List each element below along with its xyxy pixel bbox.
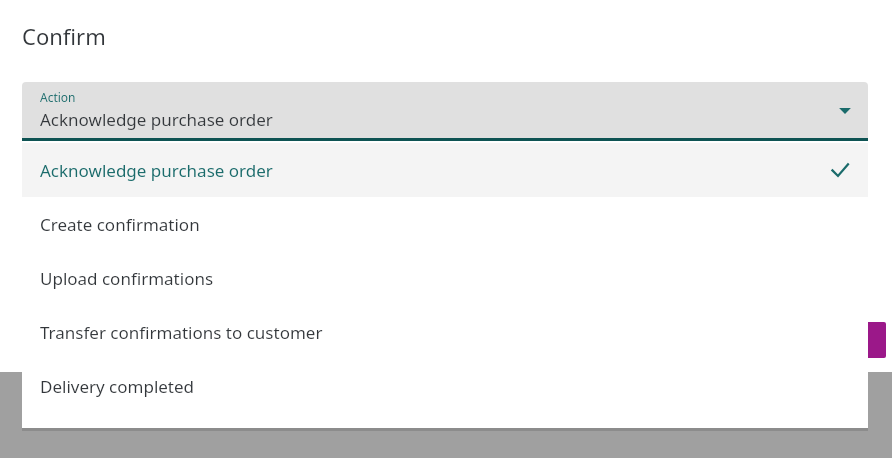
- staticText: Action: [40, 89, 76, 105]
- staticText: Delivery completed: [40, 375, 850, 398]
- button[interactable]: Create confirmation: [22, 197, 868, 251]
- button[interactable]: Action: [22, 82, 868, 141]
- staticText: Confirm: [22, 21, 106, 51]
- staticText: Create confirmation: [40, 213, 850, 236]
- staticText: Transfer confirmations to customer: [40, 321, 850, 344]
- button[interactable]: Delivery completed: [22, 359, 868, 413]
- button[interactable]: Upload confirmations: [22, 251, 868, 305]
- staticText: Acknowledge purchase order: [40, 159, 830, 182]
- button[interactable]: Transfer confirmations to customer: [22, 305, 868, 359]
- staticText: Acknowledge purchase order: [40, 108, 273, 131]
- button[interactable]: Acknowledge purchase order: [22, 143, 868, 197]
- staticText: Upload confirmations: [40, 267, 850, 290]
- other: Open list: [838, 103, 852, 117]
- button[interactable]: Submit: [856, 322, 886, 358]
